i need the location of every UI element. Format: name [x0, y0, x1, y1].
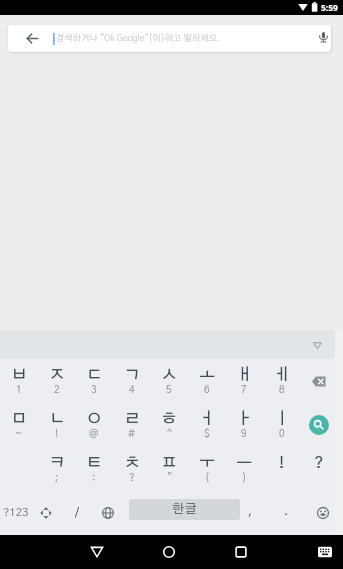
staticText: ~ — [15, 429, 23, 439]
button[interactable]: ㅗ — [188, 359, 226, 403]
button[interactable]: ㅣ — [263, 403, 301, 447]
staticText: ㅓ — [199, 411, 216, 428]
staticText: ㄹ — [124, 411, 141, 428]
button[interactable]: / — [67, 501, 87, 525]
staticText: ㅍ — [161, 455, 178, 472]
staticText: 0 — [279, 429, 285, 439]
staticText: ! — [279, 455, 285, 472]
button[interactable]: ㅈ — [38, 359, 76, 403]
button[interactable]: ㅋ — [38, 447, 76, 491]
button[interactable] — [315, 544, 335, 560]
staticText: 5:59 — [321, 2, 338, 14]
button[interactable]: ㅓ — [188, 403, 226, 447]
staticText: ㅊ — [124, 455, 141, 472]
staticText: ? — [129, 473, 135, 483]
button[interactable]: ㄷ — [75, 359, 113, 403]
staticText: / — [75, 507, 80, 519]
staticText: ㅗ — [199, 367, 216, 384]
button[interactable] — [300, 359, 338, 403]
staticText: 4 — [129, 385, 135, 395]
staticText: ! — [55, 429, 59, 439]
staticText: ; — [55, 473, 59, 483]
staticText: ㅏ — [236, 411, 253, 428]
button[interactable]: . — [278, 499, 294, 523]
staticText: 7 — [241, 385, 247, 395]
staticText: ㅔ — [274, 367, 291, 384]
button[interactable] — [38, 505, 54, 521]
staticText: ㅎ — [161, 411, 178, 428]
staticText: 2 — [54, 385, 60, 395]
staticText: 3 — [91, 385, 97, 395]
staticText: " — [167, 473, 172, 483]
button[interactable] — [300, 403, 338, 447]
staticText: ㅇ — [86, 411, 103, 428]
button[interactable]: ㅊ — [113, 447, 151, 491]
button[interactable]: ㅇ — [75, 403, 113, 447]
staticText: ㅁ — [11, 411, 28, 428]
button[interactable]: ㅡ — [225, 447, 263, 491]
button[interactable] — [157, 540, 181, 564]
button[interactable]: ! — [263, 447, 301, 491]
staticText: ㅈ — [49, 367, 66, 384]
staticText: ㄱ — [124, 367, 141, 384]
staticText: 9 — [241, 429, 247, 439]
button[interactable]: ㄱ — [113, 359, 151, 403]
staticText: $ — [204, 429, 210, 439]
staticText: ( — [205, 473, 210, 483]
staticText: ^ — [167, 429, 172, 439]
staticText: ㅐ — [236, 367, 253, 384]
button[interactable]: ㅏ — [225, 403, 263, 447]
button[interactable]: 검색하거나 "Ok Google"(이)라고 말하세요. — [8, 25, 331, 52]
button[interactable]: ㅍ — [150, 447, 188, 491]
button[interactable]: ㅔ — [263, 359, 301, 403]
staticText: ?123 — [3, 507, 29, 519]
staticText: ㅅ — [161, 367, 178, 384]
staticText: . — [284, 505, 289, 517]
staticText: ㅌ — [86, 455, 103, 472]
staticText: # — [128, 429, 136, 439]
staticText: ㅡ — [236, 455, 253, 472]
staticText: 6 — [204, 385, 210, 395]
staticText: ? — [314, 455, 324, 472]
button[interactable]: ㅌ — [75, 447, 113, 491]
button[interactable]: ㅁ — [0, 403, 38, 447]
staticText: ㅣ — [274, 411, 291, 428]
staticText: ㅋ — [49, 455, 66, 472]
button[interactable]: 한글 — [129, 499, 240, 520]
button[interactable]: , — [242, 499, 258, 523]
button[interactable] — [303, 330, 343, 359]
button[interactable]: ㅐ — [225, 359, 263, 403]
button[interactable]: ㄴ — [38, 403, 76, 447]
staticText: , — [248, 505, 253, 517]
button[interactable]: ㅜ — [188, 447, 226, 491]
staticText: ㄷ — [86, 367, 103, 384]
button[interactable]: ㅎ — [150, 403, 188, 447]
staticText: 검색하거나 "Ok Google"(이)라고 말하세요. — [56, 34, 221, 43]
button[interactable]: ?123 — [0, 501, 36, 525]
staticText: : — [92, 473, 96, 483]
staticText: ㅂ — [11, 367, 28, 384]
button[interactable] — [229, 540, 253, 564]
button[interactable] — [315, 505, 331, 521]
button[interactable]: ? — [300, 447, 338, 491]
staticText: 5 — [166, 385, 172, 395]
staticText: ) — [242, 473, 247, 483]
staticText: ㅜ — [199, 455, 216, 472]
button[interactable]: ㅅ — [150, 359, 188, 403]
staticText: @ — [89, 429, 99, 439]
button[interactable] — [100, 505, 116, 521]
staticText: 8 — [279, 385, 285, 395]
button[interactable] — [85, 540, 109, 564]
staticText: 한글 — [172, 503, 197, 516]
staticText: 1 — [16, 385, 22, 395]
button[interactable]: ㅂ — [0, 359, 38, 403]
staticText: ㄴ — [49, 411, 66, 428]
button[interactable]: ㄹ — [113, 403, 151, 447]
